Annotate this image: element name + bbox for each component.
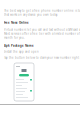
staticText: The best way to get a free phone number …: [4, 9, 80, 12]
staticText: Free Nose Online: [4, 21, 29, 24]
staticText: Apk Package Name: [4, 44, 34, 47]
staticText: that works on any device you own today.: [4, 13, 58, 16]
staticText: Most services offer a free tier with a l…: [4, 32, 80, 35]
staticText: Virtual numbers let you call and text wi…: [4, 28, 80, 31]
staticText: Install the app and open: [4, 50, 39, 53]
staticText: month for you.: [4, 36, 25, 39]
staticText: Tap the button below to claim your new n…: [4, 56, 80, 59]
